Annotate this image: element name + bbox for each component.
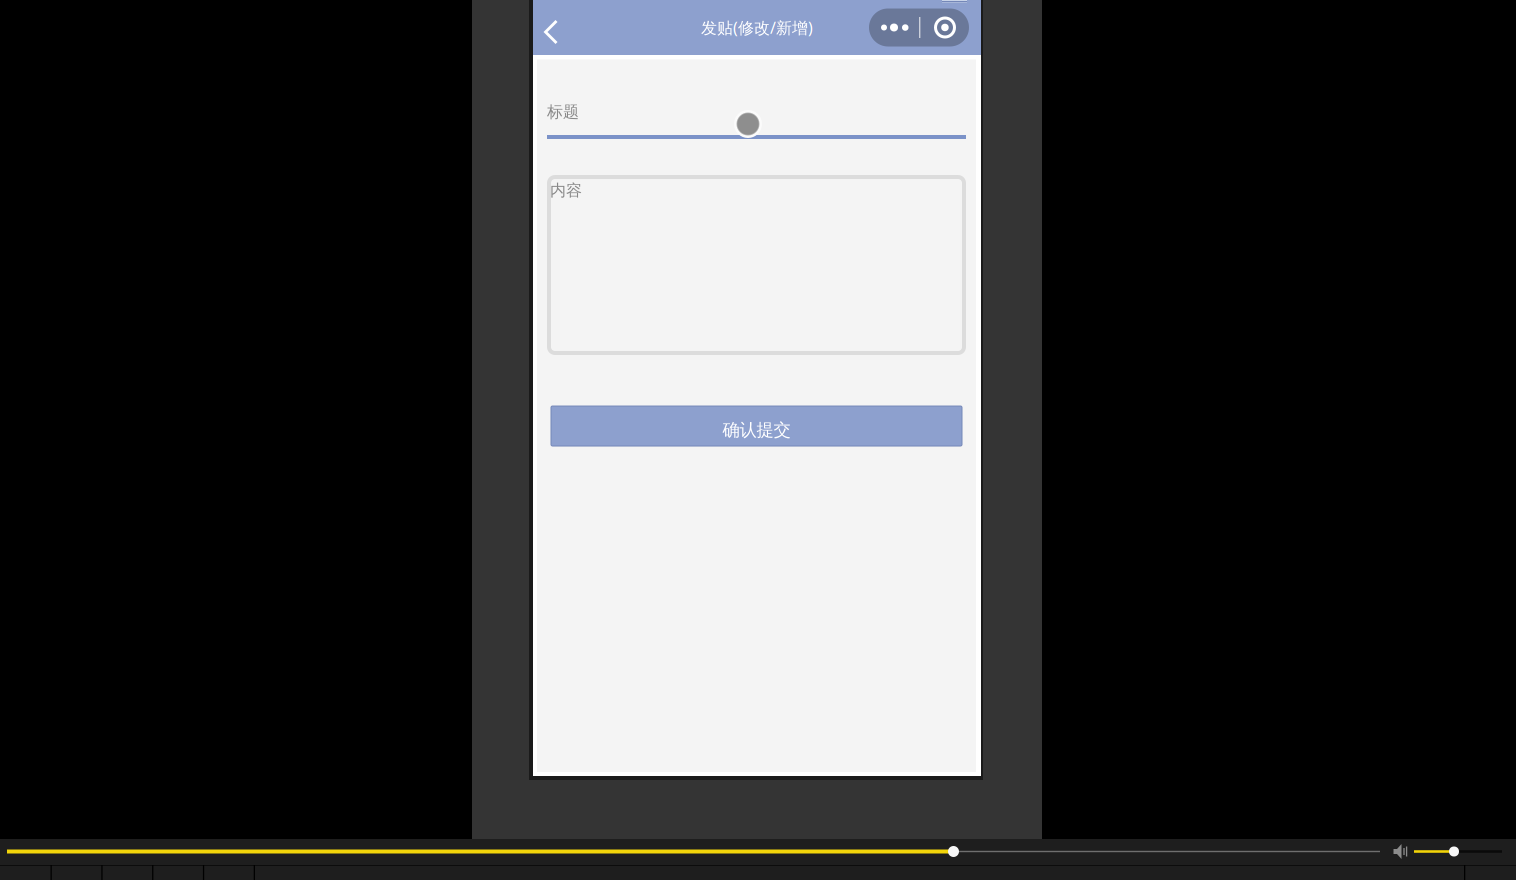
staticText: 内容 <box>550 180 582 200</box>
button[interactable]: More options <box>869 8 969 46</box>
button[interactable]: 内容 <box>549 177 964 353</box>
staticText: 标题 <box>547 102 579 122</box>
button[interactable]: Playback progress <box>7 839 1380 865</box>
staticText: 发贴(修改/新增) <box>701 17 813 38</box>
button[interactable]: 标题 <box>547 97 966 139</box>
button[interactable]: 确认提交 <box>551 406 962 446</box>
button[interactable]: Mute <box>1393 839 1411 865</box>
staticText: 确认提交 <box>722 419 790 441</box>
button[interactable]: Back <box>533 0 573 55</box>
button[interactable]: Volume <box>1414 839 1502 865</box>
